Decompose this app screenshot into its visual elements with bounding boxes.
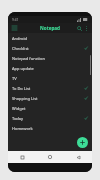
staticText: Checklist <box>12 46 84 51</box>
button[interactable]: Android <box>8 33 92 43</box>
button[interactable]: Notepad function <box>8 53 92 63</box>
staticText: Widget <box>12 106 88 111</box>
staticText: TV <box>12 76 88 81</box>
button[interactable]: App update <box>8 63 92 73</box>
staticText: App update <box>12 66 88 71</box>
button[interactable]: To Do List <box>8 83 92 93</box>
button[interactable]: TV <box>8 73 92 83</box>
button[interactable]: Widget <box>8 103 92 113</box>
button[interactable]: Checklist <box>8 43 92 53</box>
button[interactable]: Shopping List <box>8 93 92 103</box>
staticText: Android <box>12 36 88 41</box>
staticText: Homework <box>12 126 88 131</box>
button[interactable]: Recent apps <box>8 151 36 163</box>
button[interactable]: Search <box>75 24 83 32</box>
button[interactable]: More options <box>83 25 90 32</box>
button[interactable]: Homework <box>8 123 92 133</box>
staticText: Notepad function <box>12 56 88 61</box>
button[interactable]: Today <box>8 113 92 123</box>
staticText: To Do List <box>12 86 84 91</box>
button[interactable]: Back <box>64 151 92 163</box>
staticText: 9:41 <box>12 18 19 22</box>
button[interactable]: Open navigation menu <box>10 24 18 32</box>
button[interactable]: Home <box>36 151 64 163</box>
staticText: Shopping List <box>12 96 84 101</box>
staticText: Today <box>12 116 84 121</box>
staticText: Notepad <box>40 25 60 31</box>
button[interactable]: Create new note <box>77 137 88 148</box>
